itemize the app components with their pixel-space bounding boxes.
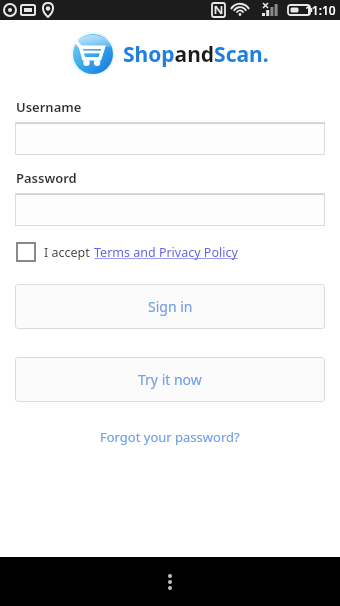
staticText: Forgot your password? [100, 428, 240, 446]
button[interactable]: Terms and Privacy Policy [94, 244, 238, 261]
staticText: Try it now [138, 370, 202, 389]
staticText: Sign in [148, 297, 193, 316]
staticText: Terms and Privacy Policy [94, 244, 238, 261]
other: Accept terms checkbox [16, 242, 36, 262]
button[interactable]: Sign in [15, 284, 325, 329]
button[interactable]: Forgot your password? [94, 424, 246, 450]
staticText: Password [16, 169, 77, 187]
staticText: 11:10 [305, 2, 336, 18]
button[interactable]: More options [148, 560, 192, 604]
staticText: I accept [44, 244, 94, 261]
button[interactable]: Accept terms checkbox [16, 242, 238, 262]
staticText: ShopandScan. [123, 40, 269, 69]
button[interactable] [15, 122, 325, 155]
staticText: Username [16, 98, 82, 116]
button[interactable]: Try it now [15, 357, 325, 402]
button[interactable] [15, 193, 325, 226]
